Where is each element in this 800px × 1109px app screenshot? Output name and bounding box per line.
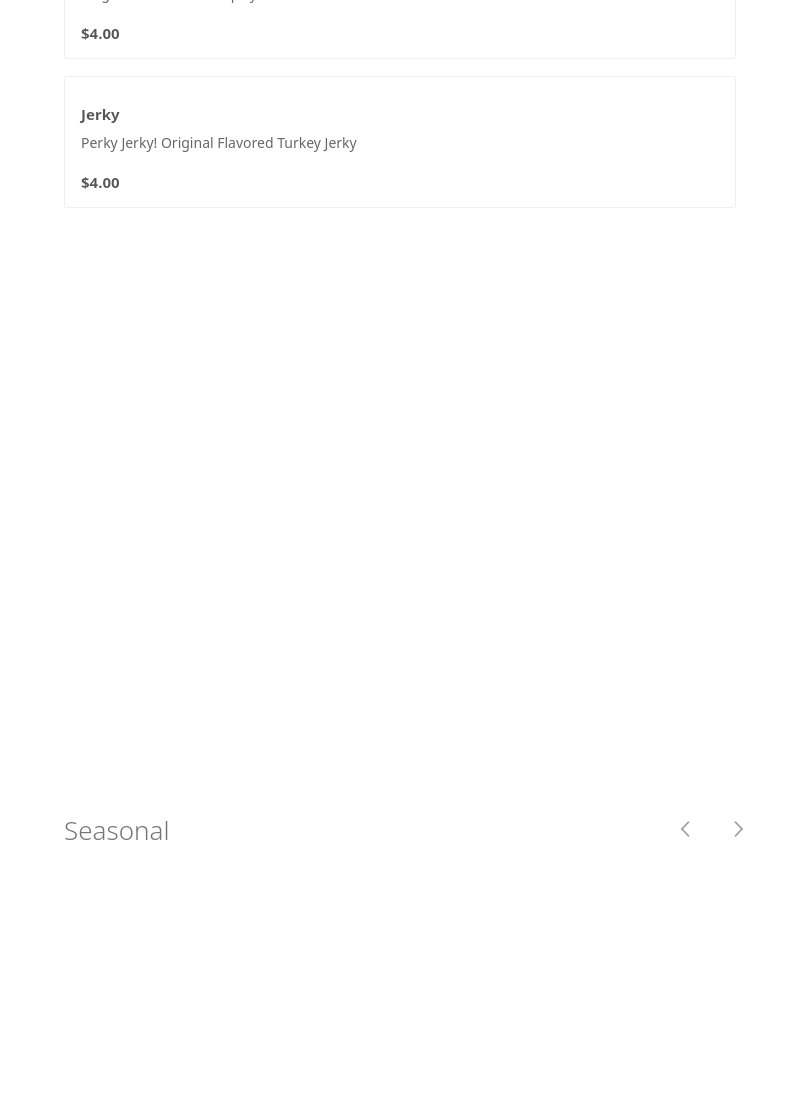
staticText: Original and Sweet & Spicy bbox=[81, 0, 257, 3]
staticText: Perky Jerky! Original Flavored Turkey Je… bbox=[81, 133, 357, 152]
staticText: Seasonal bbox=[64, 812, 170, 847]
staticText: $4.00 bbox=[81, 23, 120, 43]
staticText: $4.00 bbox=[81, 172, 120, 192]
button[interactable]: Previous bbox=[666, 809, 706, 849]
button[interactable]: Next bbox=[718, 809, 758, 849]
button[interactable]: Jerky bbox=[64, 76, 736, 208]
button[interactable]: Jerky bbox=[64, 0, 736, 59]
staticText: Jerky bbox=[81, 104, 120, 124]
